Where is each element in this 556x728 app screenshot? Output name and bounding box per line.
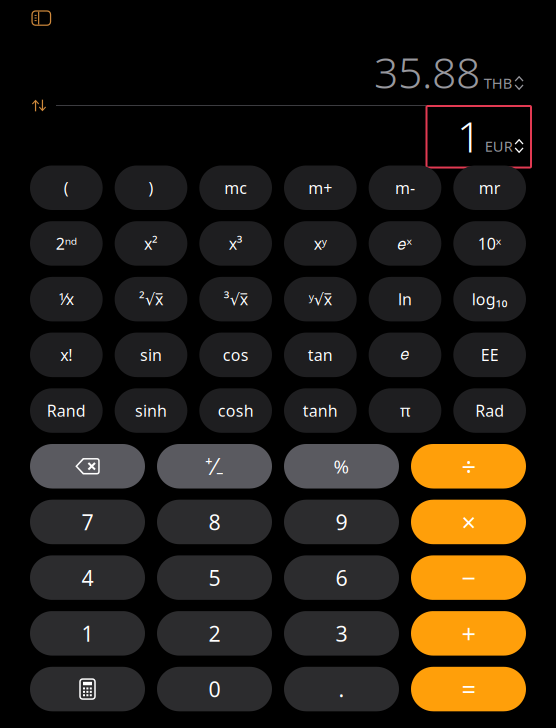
staticText: log₁₀ — [472, 288, 508, 310]
button[interactable]: ʸ√x̅ — [284, 277, 357, 321]
button[interactable]: 8 — [157, 500, 272, 544]
button[interactable]: ) — [115, 165, 187, 210]
button[interactable]: 10ˣ — [453, 221, 526, 266]
button[interactable]: sinh — [115, 388, 187, 433]
staticText: − — [461, 561, 475, 594]
staticText: xʸ — [314, 233, 327, 254]
button[interactable]: 5 — [157, 555, 272, 600]
button[interactable]: 𝑒ˣ — [369, 221, 441, 266]
staticText: ³√x̅ — [224, 288, 248, 310]
button[interactable]: ln — [369, 277, 441, 321]
staticText: cos — [223, 344, 249, 365]
staticText: Rand — [47, 400, 86, 421]
staticText: 3 — [335, 619, 347, 647]
button[interactable]: 4 — [30, 555, 145, 600]
staticText: EUR — [485, 136, 513, 156]
staticText: sinh — [135, 400, 167, 421]
button[interactable]: 0 — [157, 667, 272, 711]
staticText: 1 — [81, 619, 93, 647]
staticText: . — [338, 675, 344, 703]
button[interactable]: 6 — [284, 555, 399, 600]
staticText: 2 — [208, 619, 220, 647]
button[interactable]: 1 — [30, 611, 145, 656]
staticText: 𝑒 — [400, 347, 409, 363]
staticText: 8 — [208, 508, 220, 536]
button[interactable]: mc — [199, 165, 272, 210]
staticText: Rad — [475, 400, 504, 421]
staticText: 5 — [208, 563, 220, 592]
button[interactable]: sin — [115, 333, 187, 377]
button[interactable]: m+ — [284, 165, 357, 210]
button[interactable]: Delete — [30, 444, 145, 488]
button[interactable]: x! — [30, 333, 103, 377]
button[interactable]: ÷ — [411, 444, 526, 488]
button[interactable]: xʸ — [284, 221, 357, 266]
button[interactable]: cosh — [199, 388, 272, 433]
staticText: sin — [140, 344, 162, 365]
button[interactable]: tanh — [284, 388, 357, 433]
staticText: 1 — [457, 108, 481, 164]
staticText: % — [333, 454, 349, 479]
button[interactable]: Calculator — [30, 667, 145, 711]
button[interactable]: cos — [199, 333, 272, 377]
staticText: 2ⁿᵈ — [56, 233, 77, 254]
button[interactable]: = — [411, 667, 526, 711]
staticText: mr — [479, 177, 501, 198]
button[interactable]: m- — [369, 165, 441, 210]
staticText: ²√x̅ — [139, 288, 163, 310]
staticText: cosh — [218, 400, 254, 421]
button[interactable]: . — [284, 667, 399, 711]
button[interactable]: ( — [30, 165, 103, 210]
staticText: = — [461, 672, 475, 706]
staticText: tanh — [303, 400, 338, 421]
button[interactable]: 7 — [30, 500, 145, 544]
staticText: π — [400, 400, 410, 421]
button[interactable]: Swap currencies — [26, 93, 52, 117]
staticText: 6 — [335, 563, 347, 592]
staticText: x² — [144, 233, 158, 254]
button[interactable]: π — [369, 388, 441, 433]
button[interactable]: 2 — [157, 611, 272, 656]
staticText: ln — [398, 288, 412, 310]
staticText: 7 — [81, 508, 93, 536]
button[interactable]: x² — [115, 221, 187, 266]
button[interactable]: ²√x̅ — [115, 277, 187, 321]
staticText: tan — [308, 344, 333, 365]
button[interactable]: % — [284, 444, 399, 488]
staticText: ÷ — [461, 449, 475, 483]
staticText: THB — [484, 73, 513, 93]
button[interactable]: + — [411, 611, 526, 656]
button[interactable]: Show sidebar — [19, 1, 63, 35]
staticText: 35.88 — [374, 44, 480, 100]
button[interactable]: EE — [453, 333, 526, 377]
staticText: × — [461, 505, 475, 539]
button[interactable]: mr — [453, 165, 526, 210]
button[interactable]: Input amount, 1 EUR — [426, 106, 531, 167]
staticText: EE — [481, 344, 499, 365]
button[interactable]: tan — [284, 333, 357, 377]
button[interactable]: x³ — [199, 221, 272, 266]
button[interactable]: − — [411, 555, 526, 600]
button[interactable]: 3 — [284, 611, 399, 656]
staticText: m+ — [308, 177, 332, 198]
button[interactable]: Rand — [30, 388, 103, 433]
staticText: + — [461, 616, 475, 650]
staticText: 𝑒ˣ — [397, 233, 412, 254]
staticText: 9 — [335, 508, 347, 536]
button[interactable]: ⁺⁄₋ — [157, 444, 272, 488]
button[interactable]: × — [411, 500, 526, 544]
staticText: x! — [60, 344, 72, 365]
button[interactable]: ⅟x — [30, 277, 103, 321]
button[interactable]: 9 — [284, 500, 399, 544]
staticText: 0 — [208, 675, 220, 703]
staticText: x³ — [229, 233, 243, 254]
button[interactable]: Rad — [453, 388, 526, 433]
button[interactable]: 𝑒 — [369, 333, 441, 377]
button[interactable]: log₁₀ — [453, 277, 526, 321]
staticText: ʸ√x̅ — [309, 288, 332, 310]
staticText: ( — [64, 177, 69, 198]
button[interactable]: 2ⁿᵈ — [30, 221, 103, 266]
button[interactable]: ³√x̅ — [199, 277, 272, 321]
staticText: 10ˣ — [478, 233, 502, 254]
staticText: 4 — [81, 563, 93, 592]
